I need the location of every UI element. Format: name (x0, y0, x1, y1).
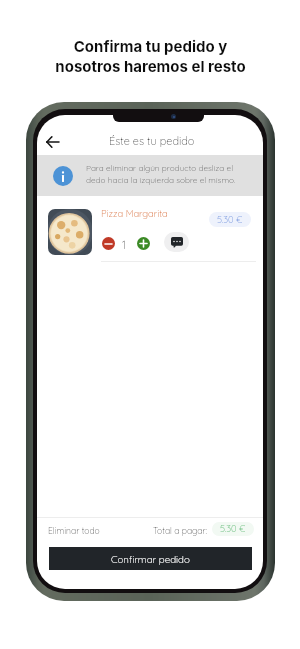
button[interactable]: Eliminar todo (48, 525, 100, 536)
staticText: Éste es tu pedido (109, 134, 195, 148)
staticText: 1 (122, 238, 126, 251)
staticText: Pizza Margarita (101, 208, 168, 220)
staticText: 5.30 € (217, 214, 243, 226)
button[interactable]: Confirmar pedido (49, 547, 252, 570)
staticText: Total a pagar: (153, 525, 207, 536)
staticText: 5.30 € (220, 523, 246, 535)
button[interactable]: Add comment (164, 232, 189, 252)
button[interactable]: Back (40, 130, 64, 154)
staticText: Confirmar pedido (111, 553, 190, 565)
button[interactable]: Decrease quantity (102, 237, 115, 250)
staticText: Eliminar todo (48, 525, 100, 536)
staticText: Confirma tu pedido y nosotros haremos el… (55, 37, 246, 76)
staticText: Para eliminar algún producto desliza el … (86, 163, 236, 185)
button[interactable]: Increase quantity (137, 237, 150, 250)
